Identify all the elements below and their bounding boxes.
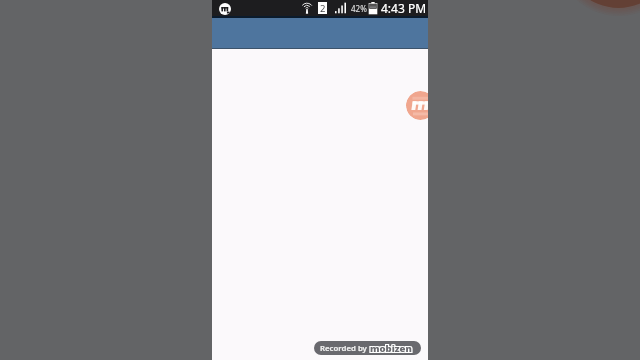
staticText: Recorded by [320,343,367,354]
button[interactable]: Recorded by [314,341,421,355]
staticText: mobizen [370,342,412,355]
staticText: mobizen [370,342,412,355]
staticText: 2 [320,2,326,14]
staticText: 42% [351,3,367,14]
staticText: 4:43 PM [381,0,427,16]
button[interactable]: Mobizen recorder [406,91,428,120]
